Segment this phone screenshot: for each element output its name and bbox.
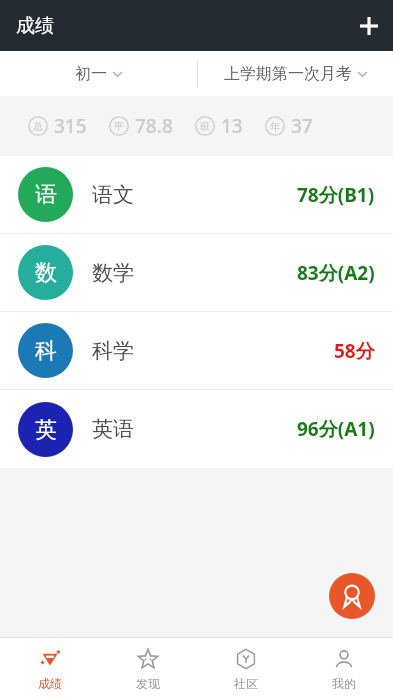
- staticText: 96分(A1): [297, 416, 375, 442]
- staticText: 英语: [92, 416, 134, 442]
- staticText: 发现: [136, 676, 160, 691]
- staticText: 语文: [92, 182, 134, 208]
- button[interactable]: 发现: [99, 638, 197, 700]
- staticText: 社区: [234, 676, 258, 691]
- button[interactable]: 初一: [0, 51, 197, 96]
- staticText: 上学期第一次月考: [224, 64, 352, 84]
- staticText: 科: [35, 337, 57, 365]
- staticText: 成绩: [16, 14, 54, 38]
- staticText: 13: [221, 113, 243, 139]
- staticText: 平: [114, 120, 124, 133]
- staticText: 总: [33, 120, 43, 133]
- staticText: 成绩: [38, 676, 62, 691]
- staticText: 语: [35, 181, 57, 209]
- staticText: 37: [291, 113, 313, 139]
- staticText: 班: [200, 120, 210, 133]
- staticText: 年: [270, 120, 280, 133]
- staticText: 数学: [92, 260, 134, 286]
- button[interactable]: 上学期第一次月考: [198, 51, 393, 96]
- button[interactable]: 科: [0, 312, 393, 390]
- staticText: 78.8: [135, 113, 173, 139]
- button[interactable]: 语: [0, 156, 393, 234]
- staticText: 78分(B1): [297, 182, 375, 208]
- button[interactable]: 成绩: [0, 638, 99, 700]
- staticText: 英: [35, 416, 57, 444]
- staticText: 我的: [332, 676, 356, 691]
- button[interactable]: 排名: [329, 573, 375, 619]
- button[interactable]: 添加: [345, 2, 393, 50]
- button[interactable]: 英: [0, 390, 393, 468]
- staticText: 83分(A2): [297, 260, 375, 286]
- staticText: 初一: [75, 64, 107, 84]
- button[interactable]: 数: [0, 234, 393, 312]
- button[interactable]: 我的: [295, 638, 393, 700]
- staticText: 科学: [92, 338, 134, 364]
- button[interactable]: 社区: [197, 638, 295, 700]
- staticText: 315: [54, 113, 87, 139]
- staticText: 数: [35, 259, 57, 287]
- staticText: 58分: [334, 338, 375, 364]
